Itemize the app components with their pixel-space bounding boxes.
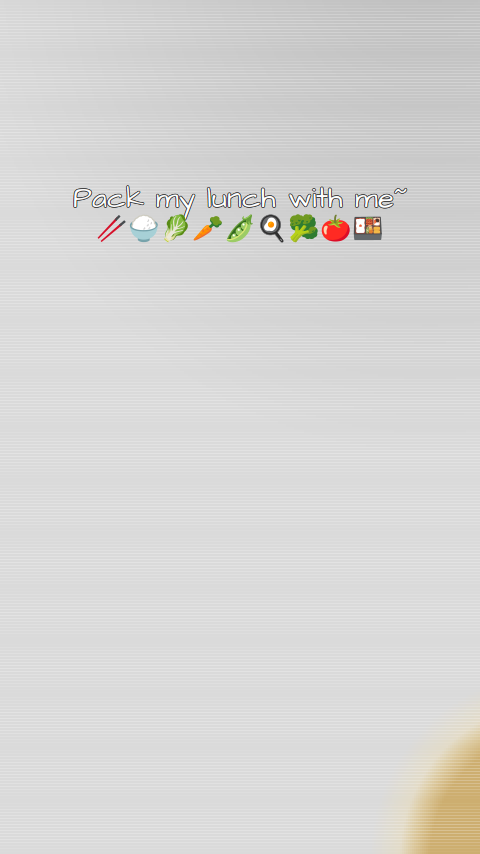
staticText: Pack my lunch with me~ <box>72 178 406 219</box>
staticText: Pack my lunch with me~ <box>73 178 407 219</box>
staticText: 🥢🍚🥬🥕🫛🍳🥦🍅🍱 <box>96 214 384 243</box>
staticText: Pack my lunch with me~ <box>74 178 408 219</box>
staticText: Pack my lunch with me~ <box>72 177 406 218</box>
staticText: Pack my lunch with me~ <box>73 178 407 219</box>
staticText: Pack my lunch with me~ <box>73 179 407 220</box>
staticText: Pack my lunch with me~ <box>73 177 407 218</box>
staticText: Pack my lunch with me~ <box>73 177 407 218</box>
staticText: Pack my lunch with me~ <box>72 178 406 219</box>
button[interactable]: Pack my lunch with me~ <box>0 178 480 248</box>
